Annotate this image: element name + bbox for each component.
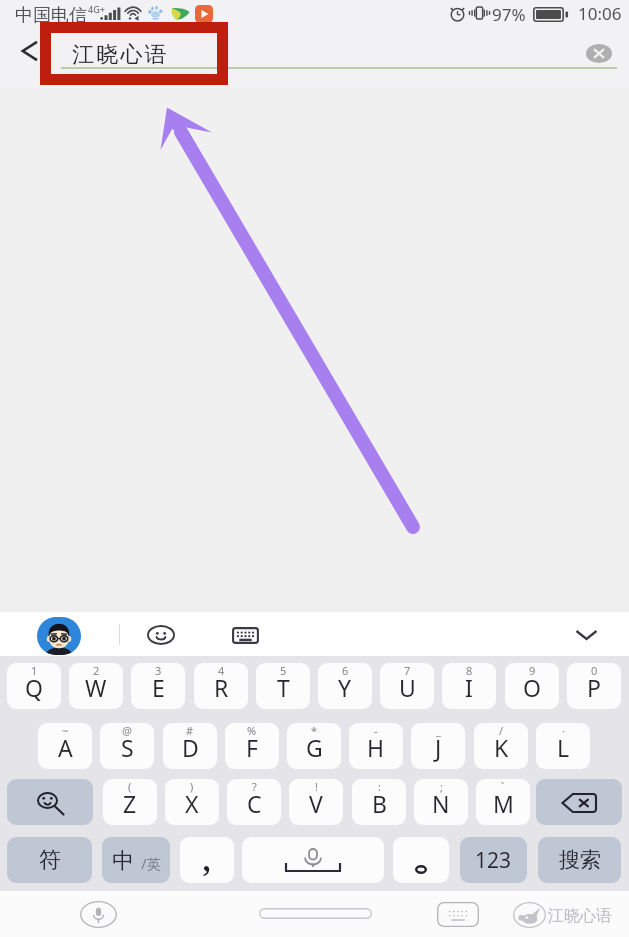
staticText: 0	[591, 663, 598, 678]
button[interactable]: 符	[7, 837, 92, 883]
button[interactable]: Emoji search	[7, 779, 93, 825]
staticText: #	[186, 723, 194, 738]
button[interactable]: 1	[7, 663, 61, 709]
button[interactable]: 3	[131, 663, 185, 709]
staticText: E	[152, 672, 165, 703]
button[interactable]: 2	[69, 663, 123, 709]
staticText: 4	[218, 663, 225, 678]
staticText: 6	[342, 663, 349, 678]
staticText: I	[465, 672, 473, 703]
staticText: 4G+	[88, 3, 105, 15]
staticText: 符	[39, 846, 61, 874]
button[interactable]: ,	[180, 837, 234, 883]
staticText: 5	[280, 663, 287, 678]
staticText: L	[557, 732, 570, 763]
button[interactable]: )	[165, 779, 219, 825]
button[interactable]: Clear text	[582, 38, 615, 68]
staticText: 8	[466, 663, 473, 678]
button[interactable]: 9	[505, 663, 559, 709]
staticText: Q	[25, 672, 43, 703]
staticText: Y	[338, 672, 352, 703]
button[interactable]: Space	[242, 837, 384, 883]
staticText: (	[128, 779, 132, 794]
staticText: Z	[123, 788, 137, 819]
button[interactable]: 123	[460, 837, 527, 883]
button[interactable]: (	[103, 779, 157, 825]
staticText: 中国电信	[15, 4, 87, 27]
button[interactable]: :	[352, 779, 406, 825]
staticText: O	[523, 672, 541, 703]
staticText: ~	[62, 723, 69, 738]
button[interactable]: 搜索	[538, 837, 621, 883]
staticText: ,	[202, 837, 212, 881]
button[interactable]: Backspace	[536, 779, 622, 825]
staticText: 7	[404, 663, 411, 678]
staticText: 中	[112, 847, 134, 875]
button[interactable]: 8	[442, 663, 496, 709]
staticText: F	[246, 732, 258, 763]
button[interactable]: %	[225, 723, 279, 769]
button[interactable]: Voice input	[80, 901, 117, 928]
staticText: ·	[562, 723, 565, 738]
button[interactable]: 7	[380, 663, 434, 709]
button[interactable]: 6	[318, 663, 372, 709]
staticText: 97%	[492, 3, 526, 26]
button[interactable]: Keyboard layout	[226, 622, 264, 648]
button[interactable]: -	[349, 723, 403, 769]
staticText: ;	[440, 779, 443, 794]
staticText: @	[122, 723, 132, 738]
button[interactable]: /	[474, 723, 528, 769]
staticText: H	[367, 732, 385, 763]
button[interactable]: #	[163, 723, 217, 769]
staticText: 江晓心语	[72, 41, 169, 69]
button[interactable]: 0	[567, 663, 621, 709]
button[interactable]: Keyboard	[437, 902, 479, 927]
button[interactable]: ;	[414, 779, 468, 825]
button[interactable]: ·	[536, 723, 590, 769]
staticText: R	[214, 672, 229, 703]
button[interactable]: Emoji	[142, 622, 180, 648]
staticText: K	[494, 732, 509, 763]
button[interactable]: ~	[38, 723, 92, 769]
button[interactable]: `	[476, 779, 530, 825]
staticText: G	[306, 732, 323, 763]
staticText: 9	[529, 663, 536, 678]
button[interactable]: Hide keyboard	[568, 621, 604, 649]
staticText: %	[247, 723, 257, 738]
staticText: 1	[31, 663, 38, 678]
staticText: V	[309, 788, 323, 819]
staticText: /英	[134, 854, 161, 873]
staticText: !	[315, 779, 318, 794]
staticText: J	[435, 732, 442, 763]
staticText: C	[247, 788, 262, 819]
button[interactable]: Back	[6, 32, 50, 76]
staticText: A	[58, 732, 73, 763]
button[interactable]: 中	[102, 837, 170, 883]
staticText: 搜索	[559, 847, 601, 873]
button[interactable]: 4	[194, 663, 248, 709]
button[interactable]: 5	[256, 663, 310, 709]
staticText: N	[432, 788, 450, 819]
staticText: -	[374, 723, 378, 738]
staticText: 江晓心语	[548, 906, 612, 926]
button[interactable]: @	[100, 723, 154, 769]
button[interactable]: *	[287, 723, 341, 769]
staticText: P	[587, 672, 601, 703]
button[interactable]: Home	[259, 908, 372, 919]
staticText: 10:06	[578, 2, 622, 25]
button[interactable]	[393, 837, 449, 883]
staticText: ?	[252, 779, 257, 794]
button[interactable]: _	[411, 723, 465, 769]
button[interactable]: Profile	[37, 617, 81, 655]
staticText: X	[185, 788, 199, 819]
staticText: `	[501, 779, 505, 794]
staticText: :	[378, 779, 381, 794]
button[interactable]: !	[289, 779, 343, 825]
button[interactable]: ?	[227, 779, 281, 825]
staticText: D	[182, 732, 199, 763]
staticText: 123	[475, 846, 512, 875]
staticText: 2	[93, 663, 100, 678]
staticText: T	[277, 672, 290, 703]
staticText: U	[399, 672, 416, 703]
staticText: 3	[155, 663, 162, 678]
